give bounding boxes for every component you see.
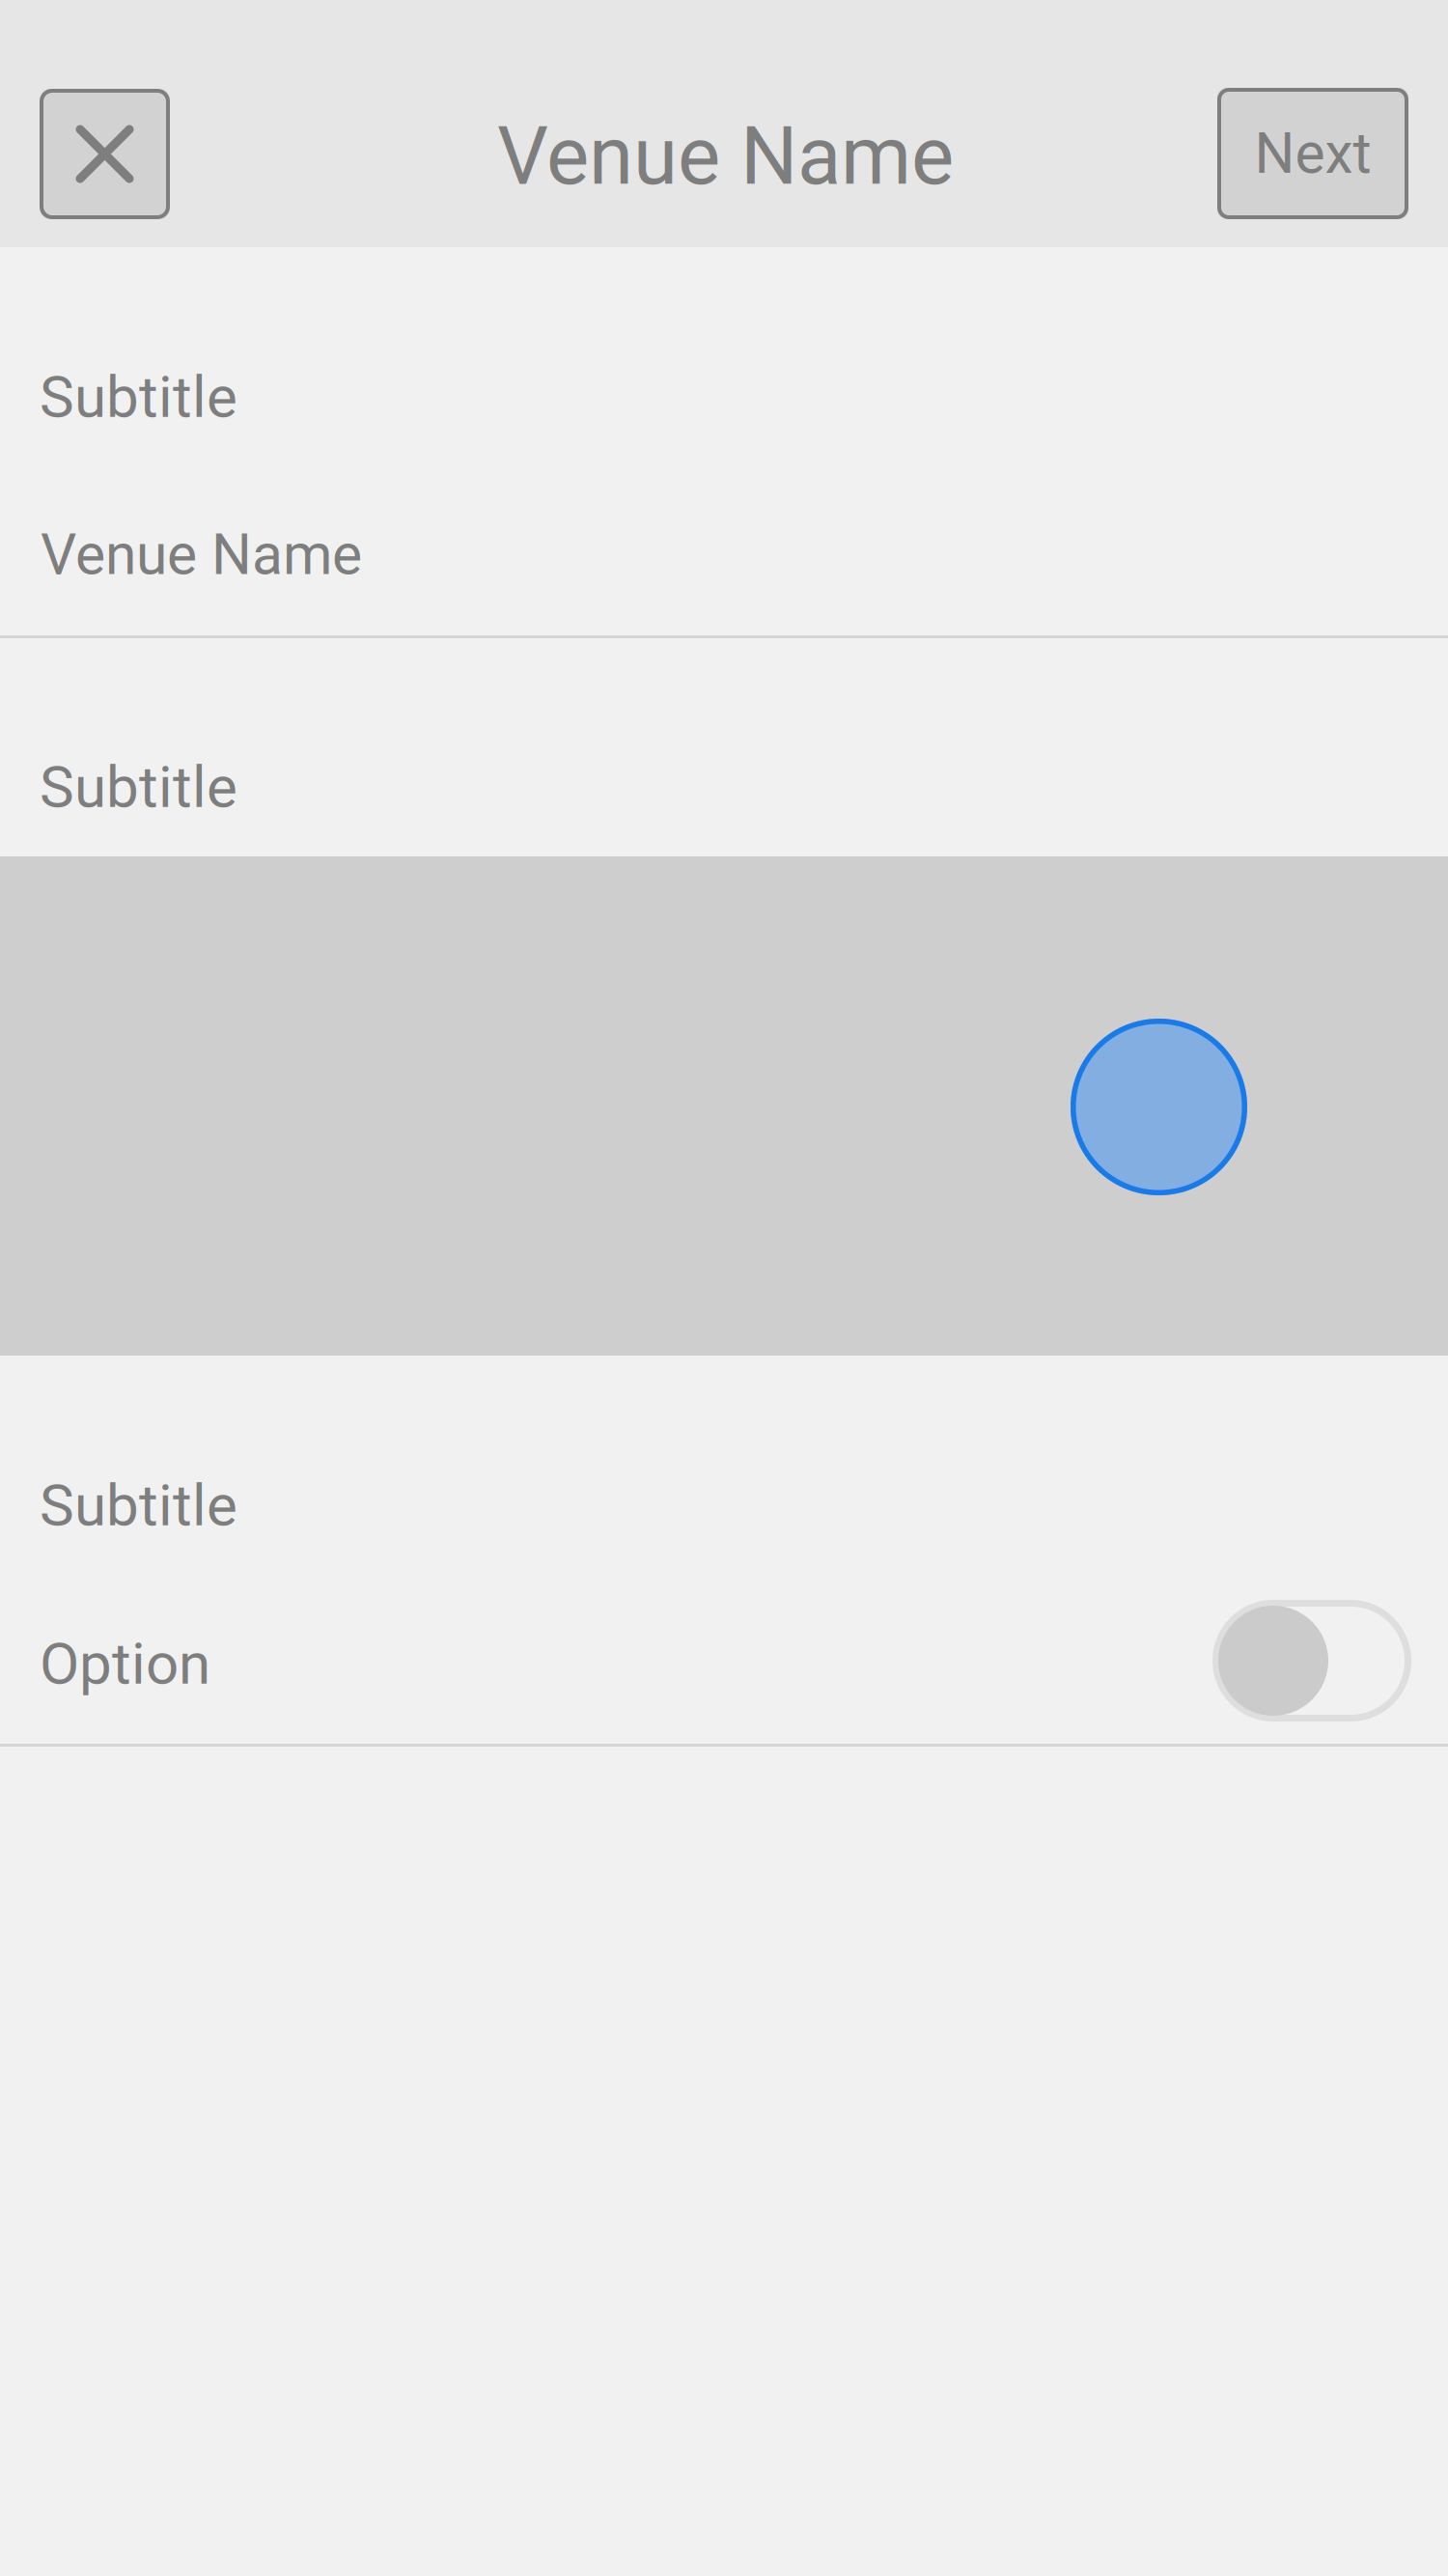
staticText: Subtitle: [40, 1471, 237, 1539]
button[interactable]: Next: [1217, 88, 1408, 219]
staticText: Option: [40, 1630, 210, 1698]
staticText: Venue Name: [497, 109, 954, 203]
button[interactable]: Close: [40, 89, 170, 219]
staticText: Next: [1254, 120, 1371, 187]
staticText: Venue Name: [41, 521, 362, 588]
button[interactable]: Map location: [0, 856, 1448, 1356]
staticText: Subtitle: [40, 753, 237, 821]
button[interactable]: Option: [0, 1600, 1448, 1747]
button[interactable]: Venue Name: [0, 479, 1448, 638]
staticText: Subtitle: [40, 363, 237, 431]
